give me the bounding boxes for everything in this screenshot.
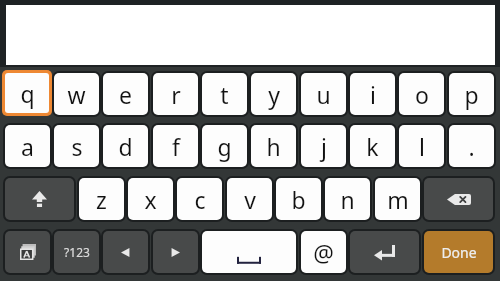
staticText: ?123 [64,244,90,260]
button[interactable]: p [447,71,496,117]
button[interactable]: Space [200,229,298,275]
button[interactable]: @ [299,229,348,275]
button[interactable]: d [101,123,150,169]
staticText: g [217,131,232,162]
staticText: x [144,184,157,215]
button[interactable]: q [2,70,52,116]
staticText: c [194,184,206,215]
button[interactable]: Done [422,229,495,275]
staticText: h [266,131,281,162]
button[interactable]: Move cursor right [151,229,200,275]
staticText: v [244,184,256,215]
button[interactable]: n [323,176,372,222]
button[interactable]: i [348,71,397,117]
staticText: e [119,79,132,110]
staticText: o [415,79,429,110]
staticText: s [71,131,83,162]
staticText: u [316,79,331,110]
button[interactable]: Move cursor left [101,229,150,275]
staticText: . [468,131,475,162]
button[interactable]: l [397,123,446,169]
button[interactable]: j [299,123,348,169]
button[interactable]: y [249,71,298,117]
button[interactable]: u [299,71,348,117]
button[interactable]: f [151,123,200,169]
staticText: n [340,184,355,215]
button[interactable]: Enter [348,229,421,275]
staticText: j [321,131,327,162]
button[interactable]: s [52,123,101,169]
button[interactable]: k [348,123,397,169]
staticText: k [366,131,379,162]
staticText: z [96,184,107,215]
button[interactable]: . [447,123,496,169]
button[interactable]: Backspace [422,176,495,222]
staticText: r [171,79,181,110]
staticText: m [387,184,409,215]
button[interactable]: a [3,123,52,169]
button[interactable]: t [200,71,249,117]
button[interactable]: v [225,176,274,222]
button[interactable]: o [397,71,446,117]
button[interactable]: z [77,176,126,222]
staticText: b [291,184,306,215]
staticText: q [20,78,35,109]
staticText: Done [441,243,477,262]
staticText: t [220,79,229,110]
button[interactable]: b [274,176,323,222]
staticText: p [464,79,479,110]
staticText: f [172,131,180,162]
button[interactable]: ?123 [52,229,101,275]
staticText: w [67,79,86,110]
button[interactable]: g [200,123,249,169]
button[interactable]: e [101,71,150,117]
staticText: y [268,79,280,110]
staticText: i [370,79,376,110]
button[interactable]: r [151,71,200,117]
button[interactable]: h [249,123,298,169]
button[interactable]: Change keyboard [3,229,52,275]
staticText: d [118,131,133,162]
button[interactable]: Shift [3,176,76,222]
button[interactable]: c [175,176,224,222]
staticText: a [21,131,34,162]
button[interactable]: m [373,176,422,222]
staticText: @ [313,237,334,268]
staticText: l [419,131,425,162]
button[interactable]: x [126,176,175,222]
button[interactable]: w [52,71,101,117]
